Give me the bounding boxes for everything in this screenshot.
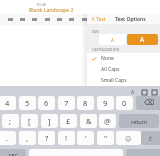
staticText: ! xyxy=(65,133,68,143)
button[interactable]: 4 xyxy=(0,96,16,110)
button[interactable]: Insert xyxy=(139,87,149,97)
staticText: ⇧ xyxy=(148,135,154,142)
staticText: A xyxy=(111,37,114,43)
button[interactable]: @ xyxy=(99,114,116,128)
staticText: 5 xyxy=(25,98,30,108)
button[interactable]: 7 xyxy=(58,96,75,110)
button[interactable]: Hide xyxy=(149,87,159,97)
button[interactable]: Format xyxy=(128,87,138,97)
staticText: £ xyxy=(66,116,71,126)
staticText: 7 xyxy=(64,98,69,108)
button[interactable]: Tool 5 xyxy=(65,14,77,25)
staticText: ; xyxy=(9,116,12,126)
staticText: All Caps xyxy=(101,66,120,73)
staticText: None xyxy=(101,55,114,62)
staticText: ' xyxy=(85,133,87,143)
staticText: " xyxy=(104,133,108,143)
button[interactable]: 9 xyxy=(97,96,114,110)
staticText: A xyxy=(131,89,135,96)
staticText: , xyxy=(26,133,29,143)
staticText: ⌫ xyxy=(144,99,154,107)
button[interactable]: . xyxy=(0,131,16,145)
button[interactable]: Tool 1 xyxy=(16,14,28,25)
button[interactable]: , xyxy=(19,131,36,145)
button[interactable]: Shift xyxy=(141,131,160,145)
staticText: ? xyxy=(45,133,49,143)
button[interactable]: [ xyxy=(21,114,38,128)
button[interactable]: None xyxy=(87,53,160,64)
button[interactable]: & xyxy=(80,114,97,128)
button[interactable]: £ xyxy=(60,114,77,128)
button[interactable]: Tool 2 xyxy=(28,14,40,25)
button[interactable]: ' xyxy=(77,131,94,145)
staticText: 8 xyxy=(83,98,88,108)
button[interactable]: ? xyxy=(38,131,55,145)
button[interactable]: Text xyxy=(91,16,106,22)
button[interactable]: ! xyxy=(58,131,75,145)
button[interactable]: All Caps xyxy=(87,64,160,75)
staticText: return xyxy=(131,118,148,125)
staticText: 4 xyxy=(5,98,10,108)
staticText: SIZE xyxy=(92,29,100,34)
button[interactable]: Tool 3 xyxy=(41,14,53,25)
staticText: ABC xyxy=(8,153,18,156)
button[interactable]: Tool 4 xyxy=(53,14,65,25)
staticText: ☺ xyxy=(125,135,132,142)
button[interactable]: ; xyxy=(2,114,19,128)
staticText: A xyxy=(140,35,145,44)
button[interactable]: Tool 0 xyxy=(4,14,16,25)
staticText: ] xyxy=(48,116,51,126)
button[interactable]: Larger text xyxy=(127,34,158,45)
button[interactable]: Backspace xyxy=(136,96,160,110)
staticText: 10:46 xyxy=(36,2,47,7)
button[interactable]: Small Caps xyxy=(87,75,160,86)
staticText: & xyxy=(86,116,92,126)
button[interactable]: ABC xyxy=(0,149,26,156)
button[interactable]: 0 xyxy=(116,96,133,110)
staticText: CAPITALIZATION xyxy=(92,47,120,52)
staticText: @ xyxy=(104,116,111,126)
button[interactable]: " xyxy=(97,131,114,145)
button[interactable]: Smaller text xyxy=(99,34,126,45)
staticText: Text Options xyxy=(115,16,146,23)
staticText: 0 xyxy=(122,98,127,108)
button[interactable]: 6 xyxy=(38,96,55,110)
staticText: [ xyxy=(28,116,31,126)
button[interactable]: Tool 6 xyxy=(78,14,90,25)
button[interactable]: 8 xyxy=(77,96,94,110)
staticText: 9 xyxy=(103,98,108,108)
button[interactable]: Emoji xyxy=(116,131,141,145)
button[interactable]: ] xyxy=(41,114,58,128)
button[interactable]: 5 xyxy=(19,96,36,110)
staticText: Text xyxy=(96,16,106,22)
button[interactable]: Return xyxy=(119,114,159,128)
staticText: 6 xyxy=(44,98,49,108)
staticText: Blank Landscape 2 xyxy=(29,7,74,14)
staticText: Small Caps xyxy=(101,77,127,84)
staticText: . xyxy=(6,133,9,143)
